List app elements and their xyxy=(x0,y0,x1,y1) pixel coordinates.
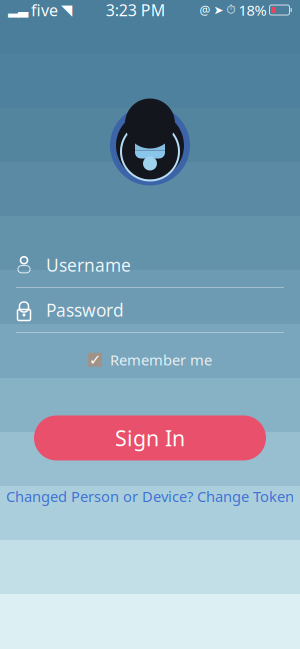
staticText: Remember me xyxy=(110,350,212,369)
button[interactable]: ✓ xyxy=(88,346,212,373)
staticText: ➤ xyxy=(213,3,223,17)
staticText: five xyxy=(31,0,58,21)
staticText: 3:23 PM xyxy=(106,0,166,21)
staticText: Changed Person or Device? Change Token xyxy=(6,486,294,506)
staticText: @ xyxy=(199,2,210,18)
staticText: ✓ xyxy=(89,351,101,368)
staticText: Sign In xyxy=(115,424,185,452)
staticText: ▂▃ xyxy=(8,2,28,17)
button[interactable]: Sign In xyxy=(34,415,266,460)
staticText: Username xyxy=(46,253,131,276)
staticText: 18% xyxy=(238,0,266,20)
staticText: ◥ xyxy=(61,2,72,18)
button[interactable]: Changed Person or Device? Change Token xyxy=(0,482,300,510)
staticText: Password xyxy=(46,298,124,321)
staticText: ⏱ xyxy=(226,4,235,16)
